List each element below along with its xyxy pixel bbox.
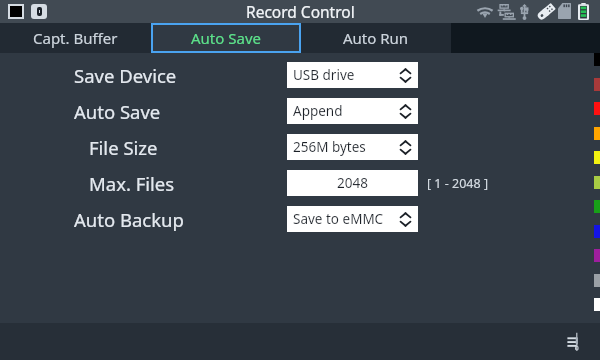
button[interactable]: Capt. Buffer (0, 23, 151, 53)
staticText: Auto Backup (74, 207, 184, 232)
staticText: Record Control (246, 1, 355, 22)
button[interactable]: Adjust settings (566, 332, 580, 351)
staticText: Max. Files (89, 171, 175, 196)
staticText: Auto Save (74, 99, 161, 124)
button[interactable]: Save to eMMC (287, 206, 418, 232)
staticText: [ 1 - 2048 ] (427, 175, 489, 192)
button[interactable]: 256M bytes (287, 134, 418, 160)
staticText: 256M bytes (293, 138, 366, 156)
staticText: USB drive (293, 66, 355, 84)
staticText: Capt. Buffer (33, 28, 118, 48)
button[interactable]: 2048 (287, 170, 418, 196)
staticText: Save to eMMC (293, 210, 384, 228)
staticText: Auto Save (191, 28, 261, 48)
button[interactable]: USB drive (287, 62, 418, 88)
button[interactable]: Auto Run (301, 23, 451, 53)
button[interactable]: Append (287, 98, 418, 124)
staticText: 2048 (287, 174, 418, 192)
staticText: Auto Run (343, 28, 409, 48)
button[interactable]: Auto Save (151, 23, 301, 53)
staticText: Save Device (74, 63, 177, 88)
staticText: Append (293, 102, 343, 120)
staticText: File Size (89, 135, 158, 160)
